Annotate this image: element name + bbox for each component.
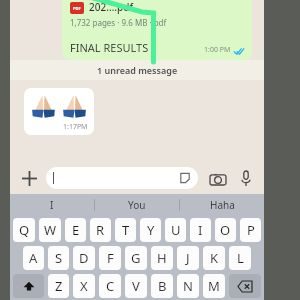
button[interactable]: G (125, 246, 147, 270)
button[interactable]: Z (48, 274, 69, 298)
staticText: B (158, 277, 167, 295)
staticText: K (210, 249, 219, 267)
button[interactable]: Q (13, 218, 35, 242)
button[interactable]: 1:17PM (24, 88, 94, 135)
staticText: 1 unread message (97, 64, 178, 76)
button[interactable]: M (203, 274, 225, 298)
button[interactable]: A (23, 246, 44, 270)
button[interactable]: H (151, 246, 173, 270)
staticText: U (171, 221, 181, 239)
button[interactable]: Haha (180, 194, 264, 216)
staticText: R (96, 221, 105, 239)
button[interactable]: S (48, 246, 69, 270)
staticText: I (50, 198, 54, 212)
staticText: J (186, 249, 190, 267)
staticText: T (122, 221, 130, 239)
staticText: L (237, 249, 244, 267)
button[interactable]: O (215, 218, 236, 242)
button[interactable]: U (165, 218, 186, 242)
staticText: P (247, 221, 255, 239)
staticText: S (55, 249, 63, 267)
staticText: W (44, 221, 57, 239)
button[interactable]: D (73, 246, 95, 270)
button[interactable]: R (90, 218, 111, 242)
button[interactable]: Camera (208, 168, 228, 188)
staticText: N (183, 277, 193, 295)
button[interactable]: PDF (62, 0, 252, 60)
button[interactable]: T (115, 218, 136, 242)
button[interactable]: J (177, 246, 199, 270)
staticText: 1:17PM (63, 122, 88, 132)
button[interactable]: K (203, 246, 225, 270)
button[interactable]: L (229, 246, 251, 270)
staticText: H (157, 249, 167, 267)
button[interactable]: V (125, 274, 147, 298)
staticText: Z (55, 277, 63, 295)
button[interactable]: I (10, 194, 94, 216)
staticText: FINAL RESULTS (70, 40, 149, 55)
staticText: M (208, 277, 220, 295)
staticText: 202….pdf (89, 0, 133, 14)
button[interactable]: Voice message (236, 168, 256, 188)
staticText: F (107, 249, 114, 267)
staticText: G (131, 249, 141, 267)
staticText: PDF (73, 6, 81, 11)
button[interactable]: P (240, 218, 261, 242)
staticText: O (220, 221, 231, 239)
button[interactable]: Backspace (229, 274, 261, 298)
button[interactable]: C (99, 274, 121, 298)
button[interactable] (46, 167, 198, 189)
button[interactable]: Attach (18, 167, 40, 189)
staticText: 1:00 PM (204, 45, 231, 55)
staticText: Q (19, 221, 30, 239)
button[interactable]: E (65, 218, 86, 242)
staticText: A (29, 249, 38, 267)
button[interactable]: N (177, 274, 199, 298)
staticText: D (79, 249, 89, 267)
button[interactable]: W (39, 218, 61, 242)
button[interactable]: I (190, 218, 211, 242)
staticText: C (106, 277, 115, 295)
button[interactable]: B (151, 274, 173, 298)
staticText: You (128, 198, 146, 212)
button[interactable]: Shift (13, 274, 44, 298)
button[interactable]: You (95, 194, 179, 216)
button[interactable]: Y (140, 218, 161, 242)
staticText: Y (147, 221, 155, 239)
staticText: I (198, 221, 203, 239)
staticText: 1,732 pages · 9.6 MB · pdf (70, 17, 167, 28)
staticText: Haha (210, 198, 235, 212)
staticText: X (80, 277, 88, 295)
staticText: E (72, 221, 80, 239)
button[interactable]: X (73, 274, 95, 298)
staticText: V (132, 277, 140, 295)
button[interactable]: F (99, 246, 121, 270)
